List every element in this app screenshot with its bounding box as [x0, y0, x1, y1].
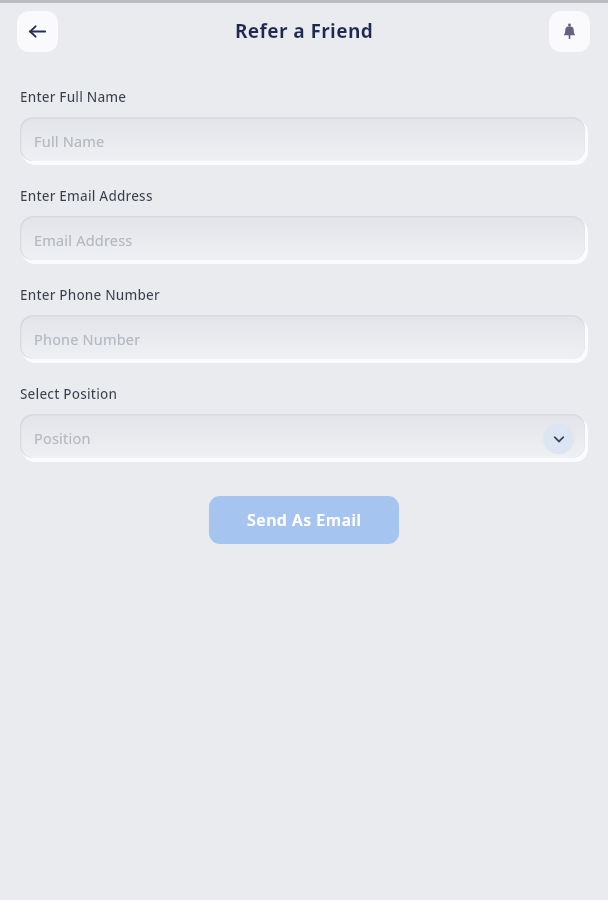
- staticText: Position: [34, 428, 91, 448]
- button[interactable]: Email Address: [20, 216, 588, 264]
- staticText: Email Address: [34, 230, 133, 250]
- button[interactable]: Full Name: [20, 117, 588, 165]
- staticText: Full Name: [34, 131, 105, 151]
- staticText: Enter Phone Number: [20, 286, 160, 304]
- staticText: Select Position: [20, 385, 118, 403]
- staticText: Send As Email: [247, 509, 362, 531]
- button[interactable]: Expand position list: [543, 423, 574, 454]
- button[interactable]: Back: [17, 11, 58, 52]
- staticText: Phone Number: [34, 329, 141, 349]
- button[interactable]: Position: [20, 414, 588, 462]
- button[interactable]: Notifications: [549, 11, 590, 52]
- staticText: Refer a Friend: [0, 18, 608, 44]
- staticText: Enter Email Address: [20, 187, 153, 205]
- button[interactable]: Send As Email: [209, 496, 399, 544]
- staticText: Enter Full Name: [20, 88, 127, 106]
- button[interactable]: Phone Number: [20, 315, 588, 363]
